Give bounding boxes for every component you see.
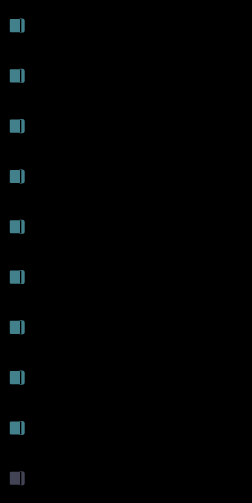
button[interactable]: Book item 2 — [0, 51, 252, 102]
button[interactable]: Book item 9 — [0, 403, 252, 453]
button[interactable]: Book item 7 — [0, 303, 252, 353]
button[interactable]: Book item 5 — [0, 203, 252, 253]
button[interactable]: Book item 1 — [0, 0, 252, 51]
button[interactable]: Book item 8 — [0, 353, 252, 403]
button[interactable]: Book item 6 — [0, 253, 252, 303]
button[interactable]: Book item 4 — [0, 153, 252, 203]
button[interactable]: Book item 3 — [0, 102, 252, 153]
button[interactable]: Book item, unavailable — [0, 453, 252, 503]
